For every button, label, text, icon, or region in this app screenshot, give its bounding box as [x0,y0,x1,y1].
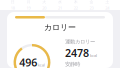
staticText: 土 [105,0,109,4]
staticText: 金 [89,0,93,4]
staticText: 24 [105,5,109,11]
staticText: 23 [89,5,93,11]
staticText: 木 [74,0,78,4]
staticText: 水 [58,0,62,4]
staticText: カロリー [44,22,76,32]
staticText: 月 [27,0,31,4]
staticText: 19 [27,5,31,11]
staticText: kcal [38,62,45,68]
staticText: 運動カロリー [65,38,95,45]
staticText: 21 [58,5,62,11]
button[interactable]: 日 [5,0,21,11]
staticText: 安静時 [65,61,80,68]
button[interactable]: 土 [99,0,115,11]
staticText: kcal [90,53,97,58]
staticText: 18 [11,5,15,11]
button[interactable]: 木 [68,0,84,11]
staticText: 日 [11,0,15,4]
button[interactable]: 水 [52,0,68,11]
button[interactable]: 月 [21,0,36,11]
staticText: 22 [74,5,78,11]
staticText: 2478 [65,46,89,60]
staticText: 火 [42,0,46,4]
button[interactable]: 金 [84,0,99,11]
staticText: 20 [42,5,46,11]
staticText: 496 [19,55,37,68]
button[interactable]: 火 [36,0,52,11]
